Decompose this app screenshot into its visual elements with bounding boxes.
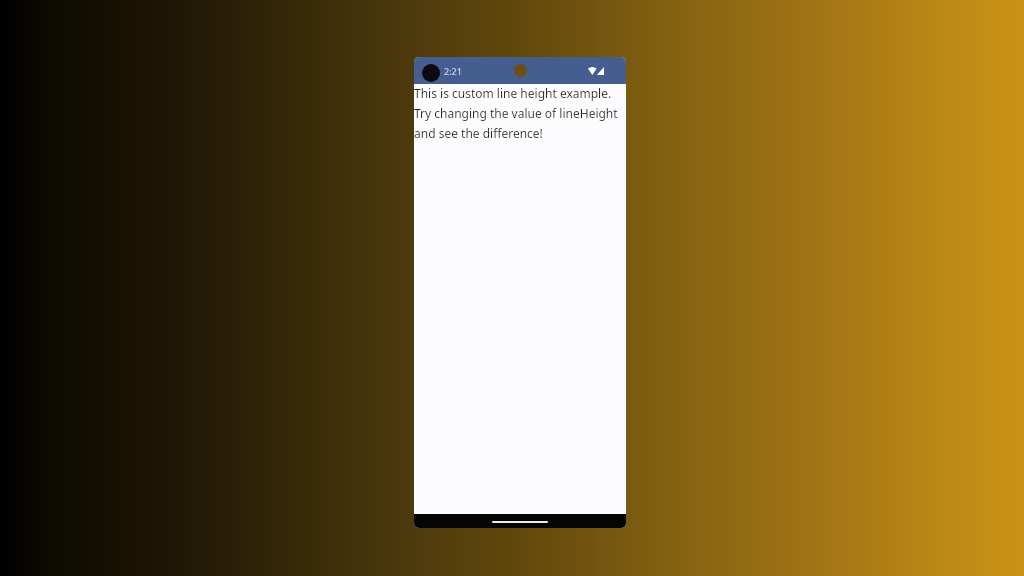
button[interactable]: Notifications <box>422 64 440 82</box>
button[interactable]: Wi-Fi and signal strength <box>588 67 604 75</box>
button[interactable]: This is custom line height example. Try … <box>414 84 626 514</box>
staticText: This is custom line height example. Try … <box>414 85 626 141</box>
button[interactable]: 2:21 <box>444 65 462 77</box>
button[interactable]: Home <box>492 521 548 523</box>
